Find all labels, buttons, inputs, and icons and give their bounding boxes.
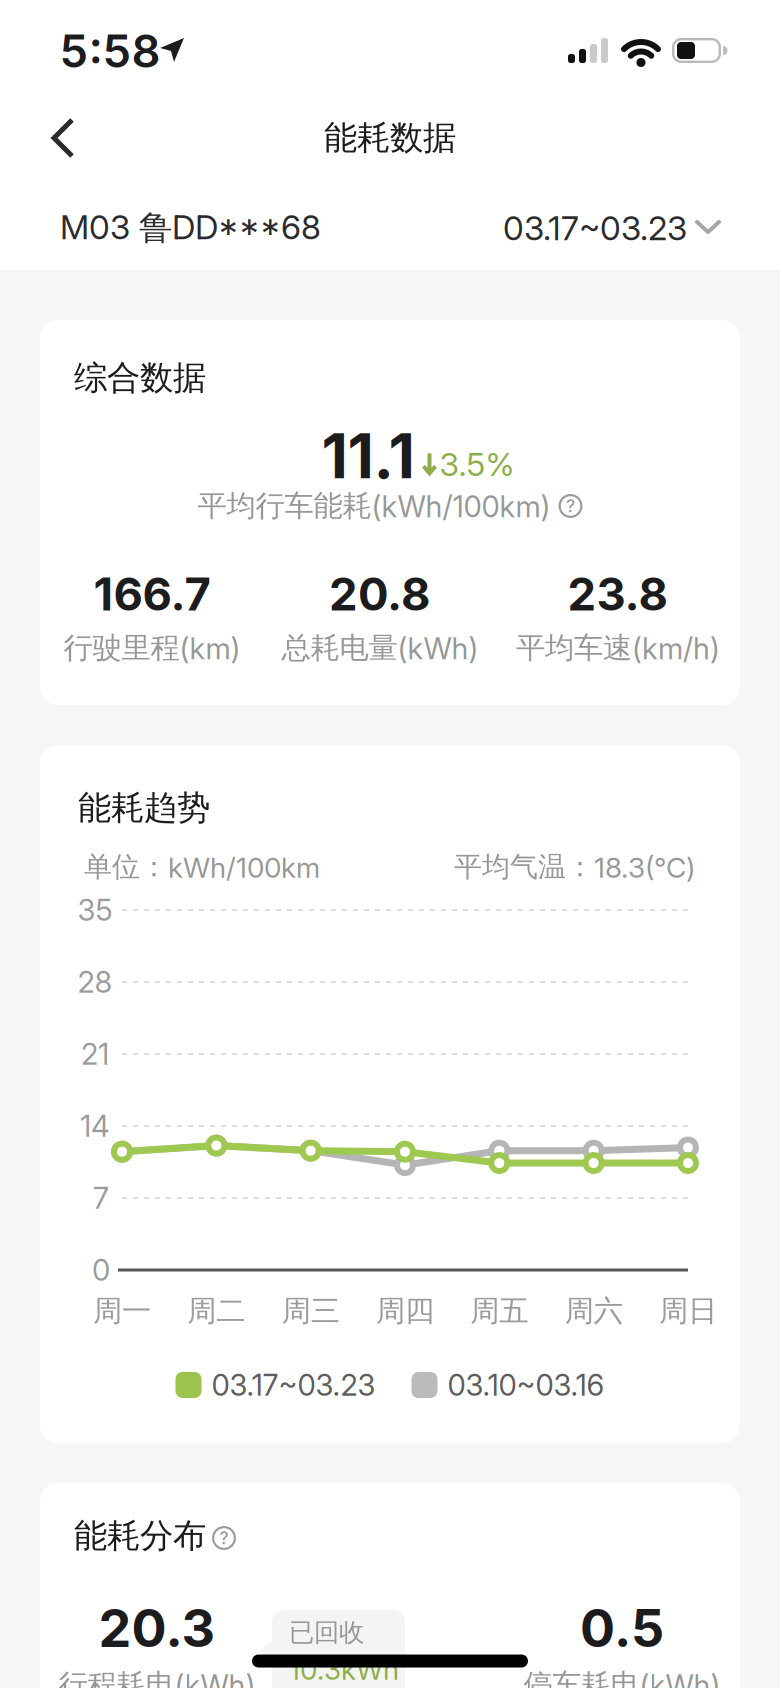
staticText: 行驶里程(km)	[63, 630, 240, 666]
staticText: 166.7	[93, 567, 210, 621]
staticText: 总耗电量(kWh)	[281, 630, 478, 666]
staticText: 周一	[93, 1293, 151, 1329]
staticText: 14	[80, 1109, 110, 1143]
staticText: 23.8	[567, 567, 668, 621]
staticText: 平均行车能耗(kWh/100km)	[197, 488, 550, 524]
staticText: 03.17~03.23	[211, 1368, 375, 1402]
staticText: 平均气温：18.3(°C)	[454, 850, 695, 884]
staticText: 已回收	[289, 1617, 364, 1648]
staticText: 能耗数据	[324, 117, 456, 158]
staticText: 周五	[470, 1293, 528, 1329]
staticText: 周三	[282, 1293, 340, 1329]
staticText: 28	[77, 965, 112, 999]
staticText: 10.3kWh	[289, 1653, 399, 1686]
button[interactable]: 03.17~03.23	[503, 208, 721, 248]
staticText: 单位：kWh/100km	[84, 850, 320, 884]
staticText: 3.5%	[439, 445, 514, 483]
staticText: 7	[93, 1181, 109, 1215]
staticText: 0	[92, 1253, 110, 1287]
staticText: 35	[77, 893, 112, 927]
button[interactable]: 说明	[212, 1526, 236, 1550]
staticText: 能耗趋势	[78, 787, 210, 828]
staticText: 周日	[659, 1293, 717, 1329]
staticText: 20.3	[98, 1597, 215, 1659]
button[interactable]: 说明	[558, 494, 582, 518]
staticText: 行程耗电(kWh)	[58, 1667, 255, 1688]
staticText: 周四	[376, 1293, 434, 1329]
staticText: 平均车速(km/h)	[516, 630, 720, 666]
staticText: ?	[566, 496, 575, 516]
staticText: 综合数据	[74, 357, 206, 398]
staticText: 停车耗电(kWh)	[523, 1667, 720, 1688]
staticText: 11.1	[321, 420, 414, 492]
staticText: 20.8	[329, 567, 431, 621]
staticText: 周二	[187, 1293, 245, 1329]
button[interactable]: M03 鲁DD***68	[60, 207, 321, 249]
staticText: 5:58	[59, 24, 160, 78]
staticText: M03 鲁DD***68	[60, 207, 321, 249]
staticText: 03.10~03.16	[447, 1368, 604, 1402]
staticText: 03.17~03.23	[503, 208, 687, 248]
staticText: ?	[219, 1528, 228, 1548]
staticText: 21	[81, 1037, 109, 1071]
staticText: 0.5	[580, 1597, 664, 1659]
button[interactable]: Back	[30, 114, 120, 162]
staticText: 能耗分布	[74, 1515, 206, 1556]
staticText: 周六	[565, 1293, 623, 1329]
